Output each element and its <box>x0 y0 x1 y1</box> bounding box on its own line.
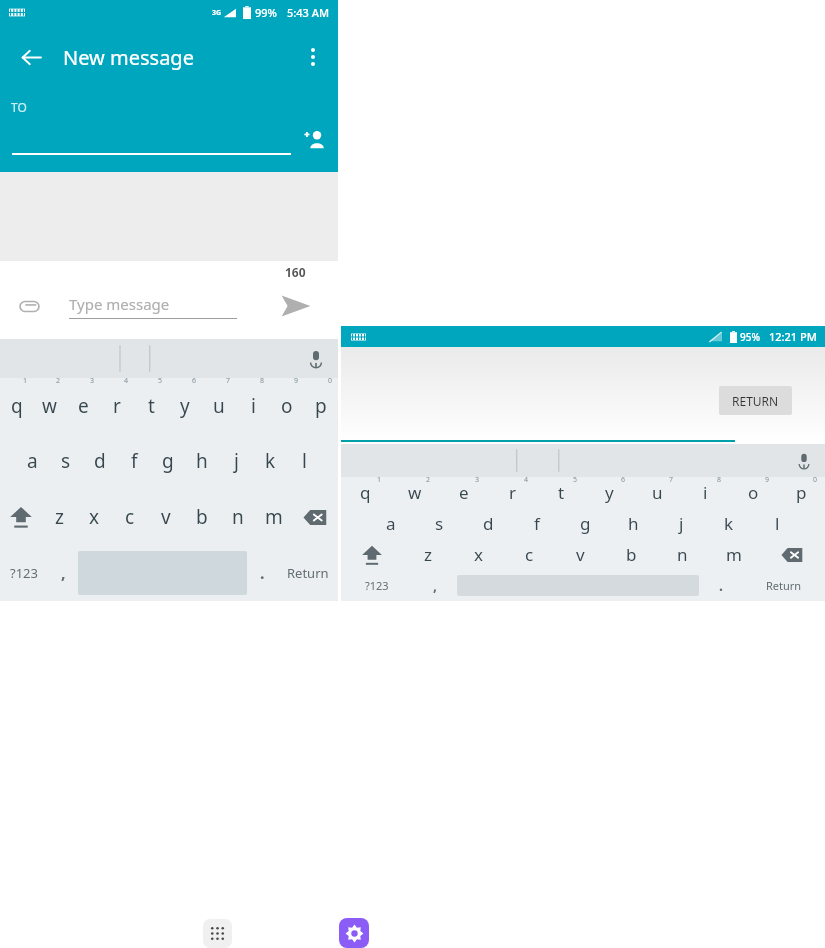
button[interactable]: Suggestions <box>341 444 825 477</box>
button[interactable]: p <box>304 378 338 433</box>
button[interactable]: a <box>16 433 49 489</box>
staticText: y <box>180 393 190 419</box>
staticText: w <box>42 393 57 419</box>
button[interactable]: d <box>83 433 117 489</box>
button[interactable]: Apps <box>203 919 232 948</box>
button[interactable]: l <box>287 433 321 489</box>
button[interactable]: v <box>148 489 184 545</box>
button[interactable]: i <box>236 378 270 433</box>
button[interactable]: x <box>453 539 504 570</box>
staticText: q <box>360 481 371 504</box>
button[interactable]: k <box>253 433 287 489</box>
button[interactable]: r <box>100 378 134 433</box>
button[interactable]: x <box>77 489 112 545</box>
button[interactable]: h <box>185 433 219 489</box>
button[interactable]: Voice input <box>306 349 326 369</box>
button[interactable]: j <box>657 508 705 539</box>
button[interactable]: RETURN <box>719 386 792 415</box>
button[interactable]: m <box>708 539 759 570</box>
button[interactable]: w <box>33 378 66 433</box>
button[interactable]: More options <box>296 40 330 74</box>
staticText: l <box>302 448 307 474</box>
button[interactable]: Type message <box>69 294 237 319</box>
button[interactable]: Voice input <box>795 452 813 470</box>
button[interactable]: e <box>439 477 488 508</box>
button[interactable]: u <box>633 477 681 508</box>
button[interactable]: f <box>513 508 561 539</box>
button[interactable]: h <box>609 508 657 539</box>
staticText: 7 <box>226 376 231 386</box>
button[interactable]: y <box>168 378 202 433</box>
button[interactable]: g <box>151 433 185 489</box>
button[interactable]: u <box>202 378 236 433</box>
button[interactable]: e <box>66 378 100 433</box>
button[interactable]: b <box>184 489 220 545</box>
button[interactable]: b <box>606 539 657 570</box>
button[interactable]: ?123 <box>0 545 48 601</box>
button[interactable]: Return <box>277 545 338 601</box>
staticText: j <box>679 512 684 535</box>
button[interactable]: y <box>585 477 633 508</box>
button[interactable]: g <box>561 508 609 539</box>
staticText: d <box>483 512 494 535</box>
button[interactable]: a <box>366 508 415 539</box>
staticText: 12:21 PM <box>769 329 817 344</box>
button[interactable]: n <box>220 489 256 545</box>
button[interactable]: k <box>705 508 753 539</box>
button[interactable]: z <box>402 539 453 570</box>
button[interactable]: Suggestions <box>0 339 338 378</box>
staticText: f <box>131 448 138 474</box>
button[interactable]: n <box>657 539 708 570</box>
staticText: k <box>265 448 276 474</box>
staticText: Return <box>766 578 802 593</box>
button[interactable]: i <box>681 477 729 508</box>
staticText: , <box>433 576 437 595</box>
button[interactable]: Send <box>278 288 314 324</box>
staticText: b <box>626 543 637 566</box>
button[interactable]: v <box>555 539 606 570</box>
button[interactable]: w <box>390 477 439 508</box>
button[interactable]: o <box>729 477 777 508</box>
staticText: 5 <box>573 475 578 485</box>
button[interactable]: s <box>415 508 464 539</box>
staticText: y <box>605 481 614 504</box>
button[interactable]: Shift <box>341 539 402 570</box>
button[interactable]: Return <box>743 570 825 601</box>
button[interactable]: o <box>270 378 304 433</box>
button[interactable]: m <box>256 489 292 545</box>
button[interactable]: c <box>504 539 555 570</box>
staticText: n <box>232 504 244 530</box>
staticText: e <box>459 481 469 504</box>
button[interactable]: Settings <box>339 918 369 948</box>
button[interactable]: c <box>112 489 148 545</box>
staticText: 3 <box>475 475 480 485</box>
staticText: 5:43 AM <box>287 5 330 20</box>
button[interactable]: l <box>753 508 801 539</box>
button[interactable]: . <box>247 545 277 601</box>
button[interactable]: , <box>48 545 78 601</box>
button[interactable]: ?123 <box>341 570 413 601</box>
button[interactable]: t <box>537 477 585 508</box>
button[interactable]: Attach <box>12 289 46 323</box>
button[interactable]: z <box>42 489 77 545</box>
button[interactable]: r <box>488 477 537 508</box>
button[interactable]: s <box>49 433 83 489</box>
button[interactable]: Add recipient <box>298 123 330 155</box>
button[interactable]: Backspace <box>292 489 338 545</box>
button[interactable]: , <box>413 570 457 601</box>
button[interactable]: j <box>219 433 253 489</box>
button[interactable]: t <box>134 378 168 433</box>
button[interactable]: q <box>341 477 390 508</box>
staticText: q <box>11 393 23 419</box>
button[interactable]: q <box>0 378 33 433</box>
button[interactable]: Shift <box>0 489 42 545</box>
button[interactable]: p <box>777 477 825 508</box>
staticText: t <box>148 393 155 419</box>
button[interactable]: Back <box>14 40 48 74</box>
button[interactable]: . <box>699 570 743 601</box>
button[interactable]: d <box>464 508 513 539</box>
button[interactable]: Backspace <box>759 539 825 570</box>
button[interactable]: f <box>117 433 151 489</box>
